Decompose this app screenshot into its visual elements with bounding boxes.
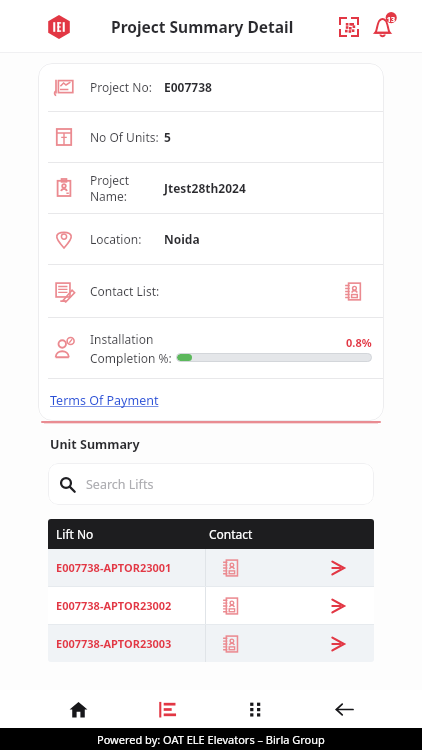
- button[interactable]: Menu: [235, 690, 275, 728]
- button[interactable]: View details for E007738-APTOR23002: [324, 592, 352, 620]
- staticText: Noida: [164, 231, 200, 247]
- staticText: E007738-APTOR23003: [56, 636, 205, 651]
- staticText: Powered by: OAT ELE Elevators – Birla Gr…: [97, 732, 325, 747]
- button[interactable]: Installation: [38, 318, 384, 378]
- staticText: Location:: [90, 231, 164, 247]
- staticText: No Of Units:: [90, 129, 164, 145]
- staticText: Contact List:: [90, 283, 340, 299]
- staticText: Lift No: [56, 526, 209, 542]
- button[interactable]: View details for E007738-APTOR23001: [324, 554, 352, 582]
- staticText: Installation: [90, 331, 154, 347]
- button[interactable]: Notifications, 13 unread: [366, 9, 402, 45]
- button[interactable]: Terms Of Payment: [38, 379, 384, 421]
- button[interactable]: Contact for E007738-APTOR23001: [218, 555, 244, 581]
- staticText: E007738-APTOR23001: [56, 560, 205, 575]
- button[interactable]: Scan QR code: [332, 10, 366, 44]
- button[interactable]: Search Lifts: [48, 463, 374, 505]
- staticText: 13: [387, 15, 396, 25]
- button[interactable]: Back: [324, 690, 364, 728]
- staticText: Jtest28th2024: [164, 180, 246, 196]
- staticText: Completion %:: [90, 350, 172, 366]
- button[interactable]: E007738-APTOR23001: [48, 549, 374, 586]
- button[interactable]: Home: [58, 690, 98, 728]
- staticText: E007738: [164, 79, 212, 95]
- button[interactable]: Logo: [46, 14, 72, 40]
- button[interactable]: E007738-APTOR23003: [48, 625, 374, 662]
- staticText: Project No:: [90, 79, 164, 95]
- staticText: Contact: [209, 526, 253, 542]
- button[interactable]: Contact for E007738-APTOR23002: [218, 593, 244, 619]
- button[interactable]: Open contact list: [340, 278, 366, 304]
- staticText: 5: [164, 129, 171, 145]
- button[interactable]: Contact List:: [38, 265, 384, 317]
- staticText: Terms Of Payment: [50, 392, 159, 409]
- button[interactable]: Contact for E007738-APTOR23003: [218, 631, 244, 657]
- button[interactable]: E007738-APTOR23002: [48, 587, 374, 624]
- button[interactable]: Reports: [147, 690, 187, 728]
- button[interactable]: Location:: [38, 214, 384, 264]
- staticText: E007738-APTOR23002: [56, 598, 205, 613]
- staticText: Project Summary Detail: [111, 16, 294, 37]
- staticText: Unit Summary: [50, 436, 140, 453]
- staticText: Project Name:: [90, 172, 164, 204]
- button[interactable]: No Of Units:: [38, 112, 384, 162]
- button[interactable]: Project No:: [38, 63, 384, 111]
- button[interactable]: View details for E007738-APTOR23003: [324, 630, 352, 658]
- staticText: Search Lifts: [86, 476, 154, 493]
- button[interactable]: Project Name:: [38, 163, 384, 213]
- staticText: 0.8%: [346, 335, 372, 350]
